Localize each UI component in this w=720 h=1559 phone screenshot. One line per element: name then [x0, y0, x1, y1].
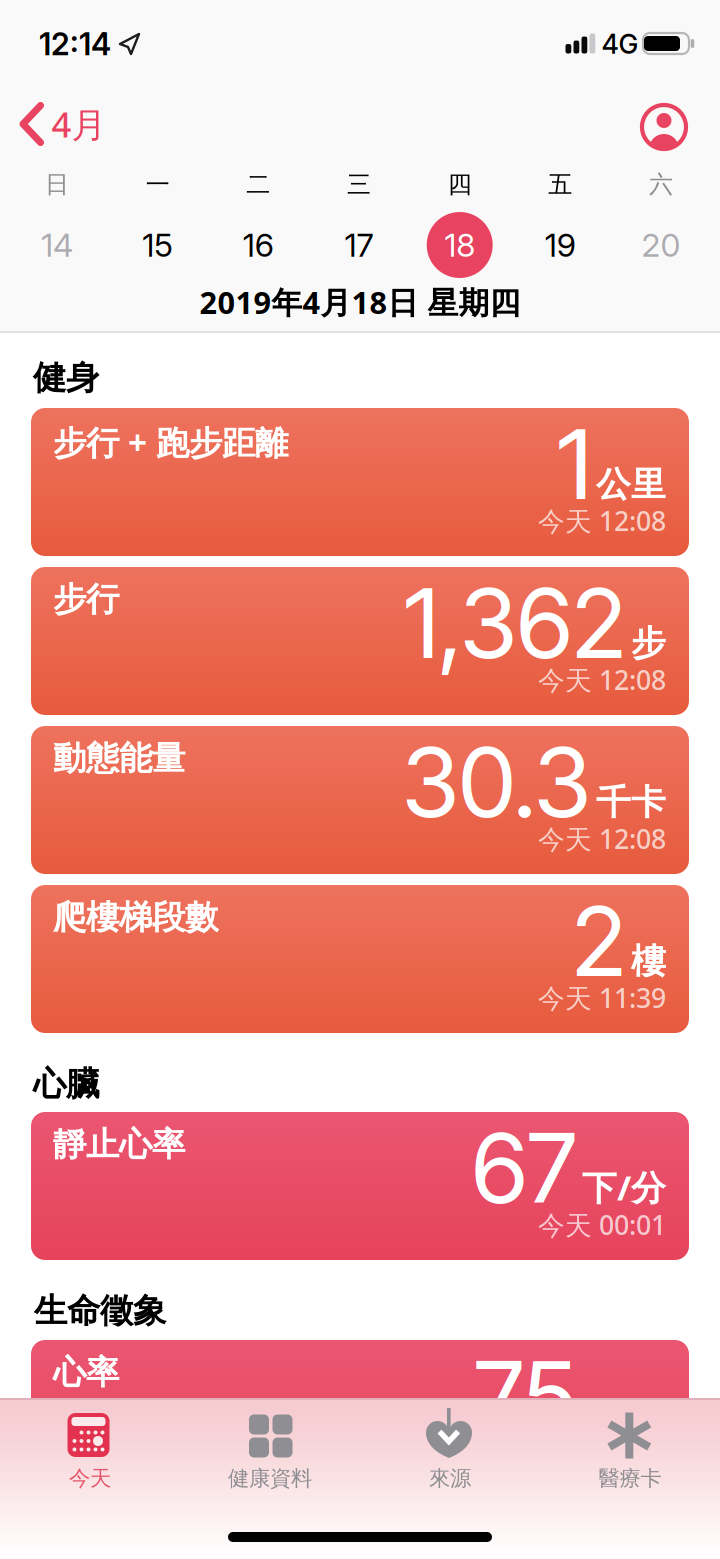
- staticText: 步行 + 跑步距離: [53, 420, 288, 464]
- staticText: 75: [474, 1338, 577, 1454]
- staticText: 來源: [429, 1465, 471, 1492]
- staticText: 12:14: [39, 25, 111, 62]
- staticText: 靜止心率: [53, 1124, 185, 1165]
- staticText: 2019年4月18日 星期四: [199, 282, 520, 322]
- staticText: 健康資料: [228, 1465, 312, 1492]
- staticText: 五: [548, 170, 572, 199]
- staticText: 今天 12:08: [538, 662, 666, 697]
- staticText: 今天 00:01: [538, 1207, 666, 1242]
- staticText: 4G: [601, 28, 638, 60]
- staticText: 心臟: [33, 1063, 99, 1104]
- staticText: 今天 12:08: [538, 821, 666, 856]
- staticText: 今天 12:13: [538, 1435, 666, 1470]
- staticText: 生命徵象: [34, 1290, 166, 1331]
- staticText: 67: [472, 1110, 577, 1226]
- staticText: 一: [146, 170, 170, 199]
- staticText: 千卡: [596, 781, 666, 824]
- staticText: 公里: [596, 463, 666, 506]
- staticText: 六: [649, 170, 673, 199]
- staticText: 心率: [53, 1352, 119, 1393]
- staticText: 16: [243, 226, 274, 264]
- staticText: 下/分: [582, 1164, 666, 1210]
- staticText: 18: [444, 226, 475, 264]
- staticText: 今天 11:39: [538, 980, 666, 1015]
- staticText: 14: [41, 226, 73, 264]
- staticText: 動態能量: [53, 738, 185, 779]
- staticText: 三: [347, 170, 371, 199]
- staticText: 今天: [69, 1465, 111, 1492]
- staticText: 健身: [33, 357, 99, 398]
- staticText: 30.3: [402, 724, 591, 840]
- staticText: 1,362: [404, 565, 626, 681]
- staticText: 下/分: [582, 1392, 666, 1438]
- staticText: 4月: [51, 101, 106, 147]
- staticText: 15: [142, 226, 173, 264]
- staticText: 日: [45, 170, 69, 199]
- staticText: 1: [557, 406, 591, 522]
- staticText: 17: [344, 226, 373, 264]
- staticText: 二: [246, 170, 270, 199]
- staticText: 醫療卡: [598, 1465, 661, 1492]
- staticText: 19: [545, 226, 576, 264]
- staticText: 今天 12:08: [538, 503, 666, 538]
- staticText: 2: [572, 883, 626, 999]
- staticText: 20: [641, 226, 680, 264]
- staticText: 爬樓梯段數: [53, 897, 218, 938]
- staticText: 四: [448, 170, 472, 199]
- staticText: 步行: [53, 579, 119, 620]
- staticText: 步: [631, 622, 666, 665]
- staticText: 樓: [631, 940, 666, 983]
